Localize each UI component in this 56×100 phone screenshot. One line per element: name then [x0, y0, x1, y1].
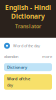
staticText: day	[7, 82, 13, 88]
staticText: Dictionary	[7, 64, 27, 70]
staticText: more	[42, 54, 52, 59]
staticText: abandon	[4, 54, 18, 59]
staticText: Word of the day	[13, 43, 40, 48]
staticText: English - Hindi	[5, 3, 51, 12]
staticText: Dictionary	[11, 12, 45, 21]
staticText: Word of the	[7, 76, 30, 81]
staticText: Translator	[15, 23, 41, 30]
